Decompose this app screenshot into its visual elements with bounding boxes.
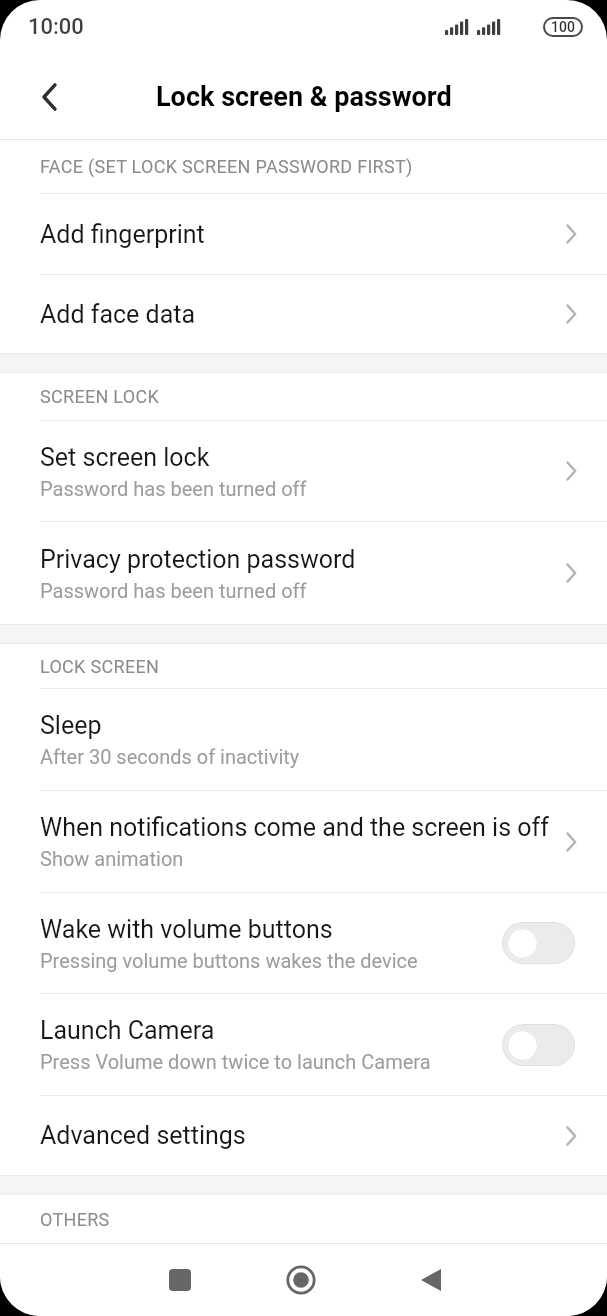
staticText: Set screen lock — [40, 443, 210, 472]
button[interactable]: Advanced settings — [0, 1096, 607, 1175]
button[interactable]: Launch Camera — [0, 994, 607, 1095]
staticText: LOCK SCREEN — [40, 656, 160, 677]
staticText: Launch Camera — [40, 1016, 215, 1045]
button[interactable]: Privacy protection password — [0, 522, 607, 624]
button[interactable]: Wake with volume buttons — [0, 893, 607, 993]
staticText: Wake with volume buttons — [40, 915, 333, 944]
staticText: Advanced settings — [40, 1121, 246, 1150]
button[interactable] — [502, 1024, 575, 1066]
button[interactable]: Add fingerprint — [0, 194, 607, 274]
staticText: Add face data — [40, 300, 196, 329]
staticText: Password has been turned off — [40, 477, 307, 500]
staticText: After 30 seconds of inactivity — [40, 745, 300, 768]
staticText: OTHERS — [40, 1209, 110, 1230]
button[interactable]: When notifications come and the screen i… — [0, 791, 607, 892]
button[interactable]: Add face data — [0, 275, 607, 353]
button[interactable] — [32, 80, 66, 114]
staticText: 100 — [551, 19, 575, 35]
staticText: When notifications come and the screen i… — [40, 813, 549, 842]
staticText: Sleep — [40, 711, 102, 740]
button[interactable]: Sleep — [0, 689, 607, 790]
staticText: Lock screen & password — [156, 81, 452, 113]
staticText: Show animation — [40, 847, 184, 870]
staticText: Press Volume down twice to launch Camera — [40, 1050, 431, 1073]
staticText: 10:00 — [28, 14, 84, 40]
button[interactable] — [160, 1260, 200, 1300]
button[interactable] — [411, 1260, 451, 1300]
staticText: SCREEN LOCK — [40, 386, 160, 407]
button[interactable]: Set screen lock — [0, 421, 607, 521]
staticText: Privacy protection password — [40, 545, 356, 574]
staticText: Pressing volume buttons wakes the device — [40, 949, 418, 972]
staticText: FACE (SET LOCK SCREEN PASSWORD FIRST) — [40, 156, 413, 177]
button[interactable] — [502, 922, 575, 964]
staticText: Add fingerprint — [40, 220, 205, 249]
button[interactable] — [281, 1260, 321, 1300]
staticText: Password has been turned off — [40, 579, 307, 602]
